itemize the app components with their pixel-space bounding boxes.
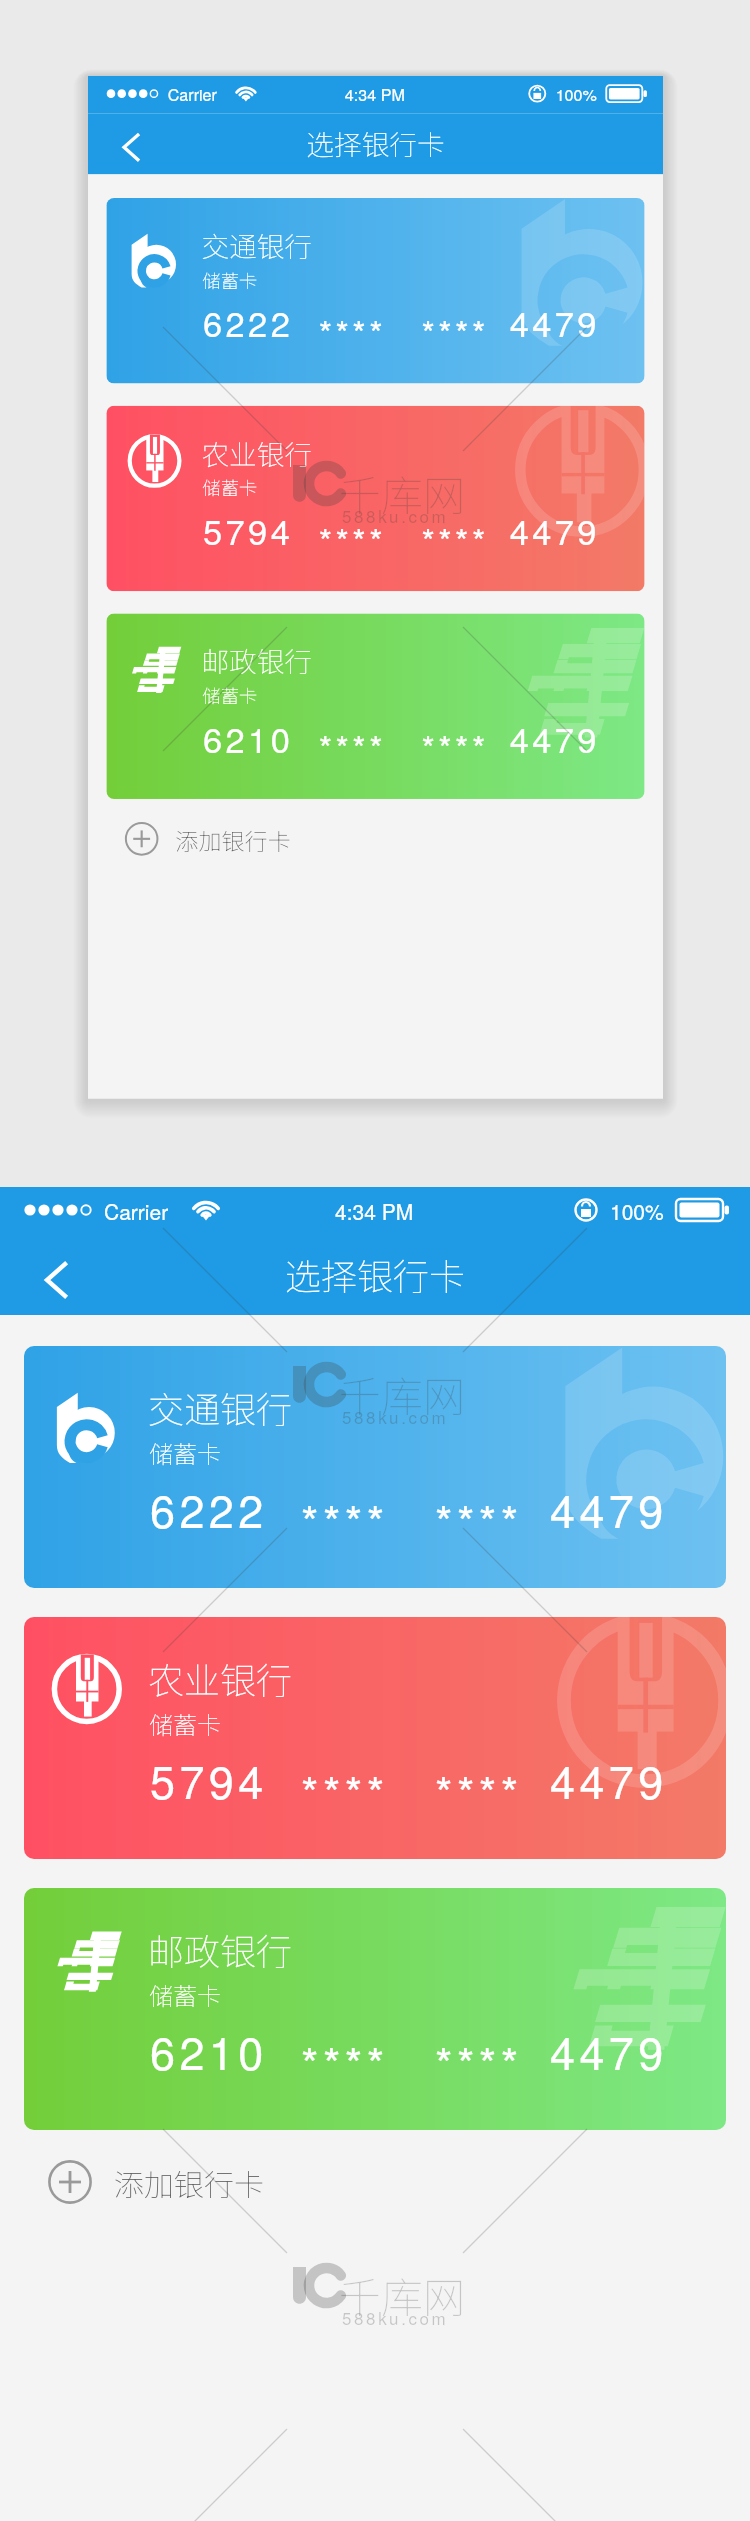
- staticText: 6210: [150, 2018, 268, 2082]
- staticText: Carrier: [104, 1196, 169, 1226]
- staticText: 6210: [203, 713, 293, 762]
- button[interactable]: 交通银行: [106, 198, 645, 383]
- staticText: 邮政银行: [201, 640, 313, 680]
- staticText: 千库网: [339, 1363, 466, 1419]
- staticText: 100%: [610, 1196, 664, 1226]
- staticText: 邮政银行: [148, 1923, 293, 1975]
- staticText: 储蓄卡: [149, 1977, 221, 2012]
- staticText: 添加银行卡: [114, 2161, 264, 2204]
- staticText: ****: [435, 2029, 523, 2093]
- staticText: 选择银行卡: [285, 1248, 466, 1300]
- staticText: 千库网: [339, 462, 466, 518]
- staticText: 选择银行卡: [306, 123, 445, 163]
- staticText: ****: [301, 1487, 389, 1551]
- staticText: 交通银行: [201, 225, 313, 265]
- staticText: ****: [421, 306, 489, 355]
- staticText: 农业银行: [201, 432, 313, 472]
- staticText: 4479: [510, 505, 600, 554]
- staticText: 储蓄卡: [149, 1706, 221, 1741]
- staticText: 4479: [550, 1476, 668, 1540]
- button[interactable]: 邮政银行: [24, 1888, 726, 2130]
- staticText: ****: [319, 721, 386, 771]
- staticText: 588ku.com: [342, 1404, 449, 1428]
- staticText: 5794: [150, 1747, 268, 1811]
- button[interactable]: 农业银行: [24, 1617, 726, 1859]
- staticText: 储蓄卡: [202, 474, 257, 501]
- staticText: 6222: [203, 298, 293, 347]
- staticText: 5794: [203, 505, 293, 554]
- staticText: 添加银行卡: [175, 823, 290, 856]
- staticText: 储蓄卡: [202, 682, 257, 708]
- staticText: 千库网: [339, 2264, 466, 2320]
- button[interactable]: 添加银行卡: [88, 799, 663, 879]
- button[interactable]: 交通银行: [24, 1346, 726, 1588]
- button[interactable]: 添加银行卡: [0, 2130, 750, 2234]
- staticText: 588ku.com: [342, 503, 449, 527]
- staticText: 4479: [510, 713, 600, 762]
- button[interactable]: 农业银行: [106, 406, 645, 591]
- staticText: ****: [301, 1758, 389, 1822]
- button[interactable]: 邮政银行: [106, 613, 645, 799]
- staticText: 交通银行: [148, 1381, 293, 1433]
- staticText: 4479: [550, 2018, 668, 2082]
- staticText: 100%: [556, 83, 597, 106]
- staticText: 储蓄卡: [202, 266, 257, 293]
- button[interactable]: Back: [20, 1248, 76, 1304]
- button[interactable]: Back: [103, 123, 146, 166]
- staticText: ****: [421, 721, 489, 771]
- staticText: ****: [435, 1487, 523, 1551]
- staticText: 4479: [550, 1747, 668, 1811]
- staticText: 农业银行: [148, 1652, 293, 1704]
- staticText: ****: [319, 514, 386, 563]
- staticText: ****: [421, 514, 489, 563]
- staticText: 4:34 PM: [335, 1196, 414, 1226]
- staticText: 4479: [510, 298, 600, 347]
- staticText: ****: [319, 306, 386, 355]
- staticText: ****: [301, 2029, 389, 2093]
- staticText: 4:34 PM: [345, 83, 405, 106]
- staticText: Carrier: [168, 83, 217, 106]
- staticText: 储蓄卡: [149, 1435, 221, 1470]
- staticText: 588ku.com: [342, 2305, 449, 2329]
- staticText: ****: [435, 1758, 523, 1822]
- staticText: 6222: [150, 1476, 268, 1540]
